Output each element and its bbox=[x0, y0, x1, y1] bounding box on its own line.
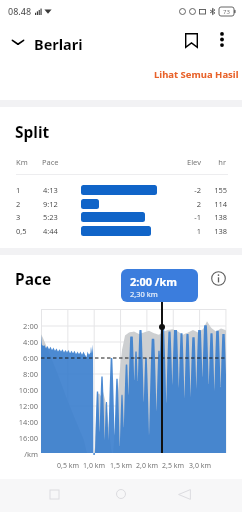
staticText: -1 bbox=[177, 212, 201, 222]
staticText: 5:23 bbox=[43, 212, 58, 222]
button[interactable]: Collapse bbox=[7, 31, 29, 53]
staticText: 1,5 km bbox=[110, 461, 132, 471]
button[interactable]: Lihat Semua Hasil bbox=[150, 64, 242, 85]
staticText: 3 bbox=[16, 212, 21, 222]
staticText: 1,0 km bbox=[83, 461, 105, 471]
staticText: 0,5 bbox=[16, 226, 27, 236]
staticText: Pace bbox=[42, 157, 59, 167]
staticText: hr bbox=[206, 157, 226, 167]
staticText: 1 bbox=[16, 185, 21, 195]
staticText: 73 bbox=[223, 8, 230, 16]
staticText: Lihat Semua Hasil bbox=[154, 68, 239, 81]
button[interactable]: Info bbox=[208, 268, 229, 289]
staticText: Berlari bbox=[34, 34, 83, 54]
staticText: Elev bbox=[177, 157, 201, 167]
staticText: 3,0 km bbox=[189, 461, 211, 471]
staticText: 2 bbox=[16, 199, 21, 209]
staticText: Km bbox=[16, 157, 28, 167]
button[interactable]: More options bbox=[211, 28, 233, 50]
staticText: /km bbox=[2, 449, 38, 459]
staticText: 2 bbox=[177, 199, 201, 209]
staticText: Pace bbox=[15, 268, 52, 289]
staticText: 0,5 km bbox=[57, 461, 79, 471]
staticText: 14:00 bbox=[2, 417, 38, 427]
button[interactable]: 3 bbox=[0, 210, 242, 223]
staticText: 2,5 km bbox=[162, 461, 184, 471]
staticText: 138 bbox=[204, 226, 227, 236]
staticText: 16:00 bbox=[2, 433, 38, 443]
staticText: 4:13 bbox=[43, 185, 58, 195]
button[interactable]: Bookmark bbox=[179, 28, 203, 52]
staticText: 114 bbox=[204, 199, 227, 209]
staticText: 4:44 bbox=[43, 226, 58, 236]
staticText: 10:00 bbox=[2, 385, 38, 395]
staticText: 2,0 km bbox=[136, 461, 158, 471]
staticText: 155 bbox=[204, 185, 227, 195]
button[interactable]: 2:00 /km bbox=[121, 269, 198, 302]
button[interactable]: Home bbox=[108, 481, 134, 507]
button[interactable]: 1 bbox=[0, 183, 242, 196]
button[interactable]: 2 bbox=[0, 197, 242, 210]
staticText: 4:00 bbox=[2, 337, 38, 347]
staticText: Split bbox=[15, 121, 50, 142]
button[interactable]: 0,5 bbox=[0, 224, 242, 237]
staticText: 08.48 bbox=[8, 5, 32, 17]
staticText: 6:00 bbox=[2, 353, 38, 363]
staticText: -2 bbox=[177, 185, 201, 195]
button[interactable]: Recents bbox=[41, 481, 67, 507]
button[interactable]: Back bbox=[171, 481, 197, 507]
staticText: 1 bbox=[177, 226, 201, 236]
staticText: 2:00 bbox=[2, 321, 38, 331]
staticText: 9:12 bbox=[43, 199, 58, 209]
staticText: 2:00 /km bbox=[130, 274, 177, 289]
staticText: 12:00 bbox=[2, 401, 38, 411]
staticText: 138 bbox=[204, 212, 227, 222]
staticText: 2,30 km bbox=[130, 289, 158, 299]
staticText: 8:00 bbox=[2, 369, 38, 379]
